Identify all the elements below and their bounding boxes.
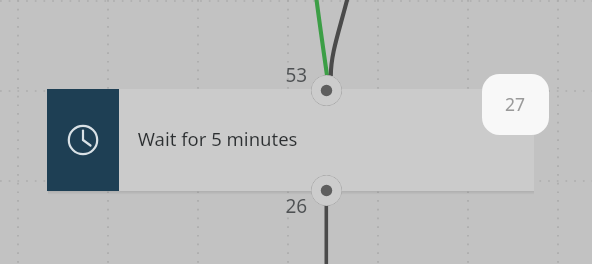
button[interactable] [482,74,549,135]
button[interactable] [47,89,534,191]
button[interactable]: Output port 26 [311,175,342,206]
button[interactable]: Input port 53 [311,75,342,106]
